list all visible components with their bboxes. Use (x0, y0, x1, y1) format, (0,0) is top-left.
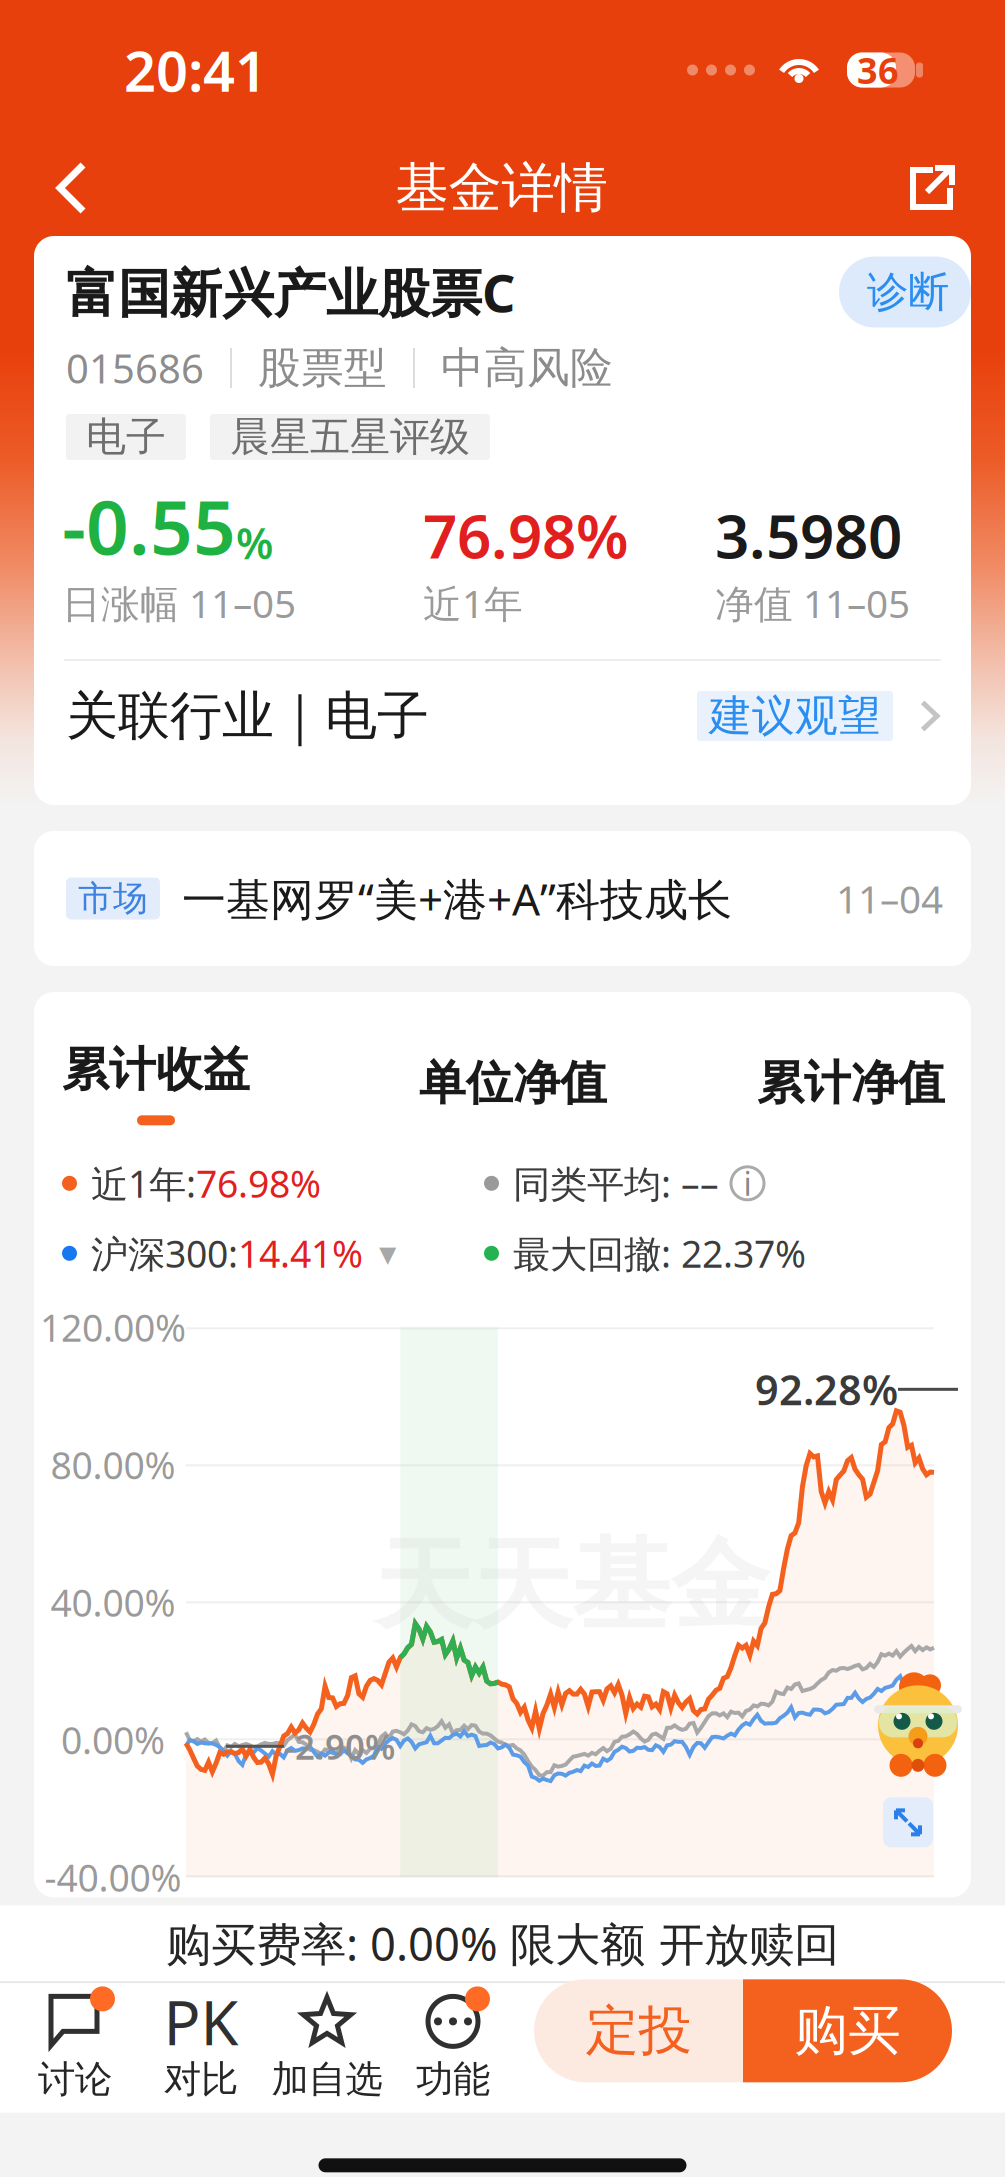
staticText: % (236, 514, 273, 571)
button[interactable]: 定投 (534, 1979, 743, 2082)
staticText: 富国新兴产业股票C (66, 257, 515, 327)
staticText: 最大回撤: 22.37% (513, 1228, 806, 1278)
staticText: 电子 (86, 412, 166, 461)
button[interactable]: 功能 (390, 1983, 516, 2112)
staticText: 沪深300: (91, 1228, 238, 1278)
staticText: 天天基金 (374, 1525, 770, 1646)
staticText: 购买费率: 0.00% 限大额 开放赎回 (166, 1913, 839, 1973)
button[interactable]: Expand chart (883, 1797, 933, 1847)
staticText: 建议观望 (709, 690, 881, 742)
staticText: 购买 (794, 1998, 900, 2064)
staticText: 14.41% (238, 1228, 363, 1278)
staticText: 20:41 (124, 33, 267, 107)
staticText: 40.00% (50, 1577, 175, 1627)
staticText: 3.5980 (715, 495, 902, 575)
staticText: 36 (857, 46, 899, 94)
staticText: 对比 (164, 2056, 238, 2102)
button[interactable]: Share (881, 140, 981, 236)
button[interactable]: 讨论 (12, 1983, 138, 2112)
staticText: 76.98% (196, 1158, 321, 1208)
button[interactable]: 关联行业｜电子 (34, 661, 971, 805)
staticText: 11–04 (836, 873, 943, 924)
button[interactable]: 累计收益 (62, 1041, 419, 1125)
staticText: 一基网罗“美+港+A”科技成长 (182, 869, 732, 928)
staticText: 92.28% (755, 1362, 898, 1417)
staticText: 近1年 (423, 577, 523, 629)
staticText: 累计净值 (757, 1054, 945, 1112)
button[interactable]: 单位净值 (419, 1054, 739, 1112)
staticText: 120.00% (40, 1302, 186, 1352)
staticText: 0.00% (61, 1715, 165, 1765)
staticText: 诊断 (867, 267, 949, 317)
button[interactable]: 市场 (34, 831, 971, 966)
staticText: 76.98% (423, 495, 629, 575)
button[interactable]: Back (22, 140, 122, 236)
staticText: 015686 (66, 341, 204, 394)
staticText: 关联行业｜电子 (66, 684, 429, 748)
button[interactable]: 购买 (743, 1979, 952, 2082)
staticText: 日涨幅 11–05 (62, 577, 296, 629)
button[interactable]: 诊断 (839, 256, 971, 327)
staticText: 定投 (585, 1998, 691, 2064)
staticText: -40.00% (44, 1852, 181, 1902)
staticText: 近1年: (91, 1158, 196, 1208)
staticText: 基金详情 (395, 155, 607, 221)
button[interactable]: 累计净值 (757, 1054, 945, 1112)
staticText: i (743, 1162, 751, 1205)
staticText: -0.55 (62, 476, 236, 575)
staticText: ▾ (379, 1234, 396, 1273)
staticText: 市场 (78, 877, 148, 920)
button[interactable]: 加自选 (264, 1983, 390, 2112)
staticText: 讨论 (38, 2056, 112, 2102)
staticText: PK (163, 1981, 238, 2062)
staticText: 同类平均: –– (513, 1158, 719, 1208)
staticText: 中高风险 (441, 342, 613, 394)
staticText: 净值 11–05 (715, 577, 910, 629)
staticText: 晨星五星评级 (230, 412, 470, 461)
staticText: 单位净值 (419, 1054, 607, 1112)
staticText: -2.90% (284, 1723, 395, 1769)
staticText: 累计收益 (62, 1041, 250, 1098)
staticText: 加自选 (271, 2056, 382, 2102)
staticText: 股票型 (258, 342, 387, 394)
staticText: 功能 (416, 2056, 490, 2102)
button[interactable]: PK (138, 1983, 264, 2112)
staticText: 80.00% (50, 1440, 175, 1490)
